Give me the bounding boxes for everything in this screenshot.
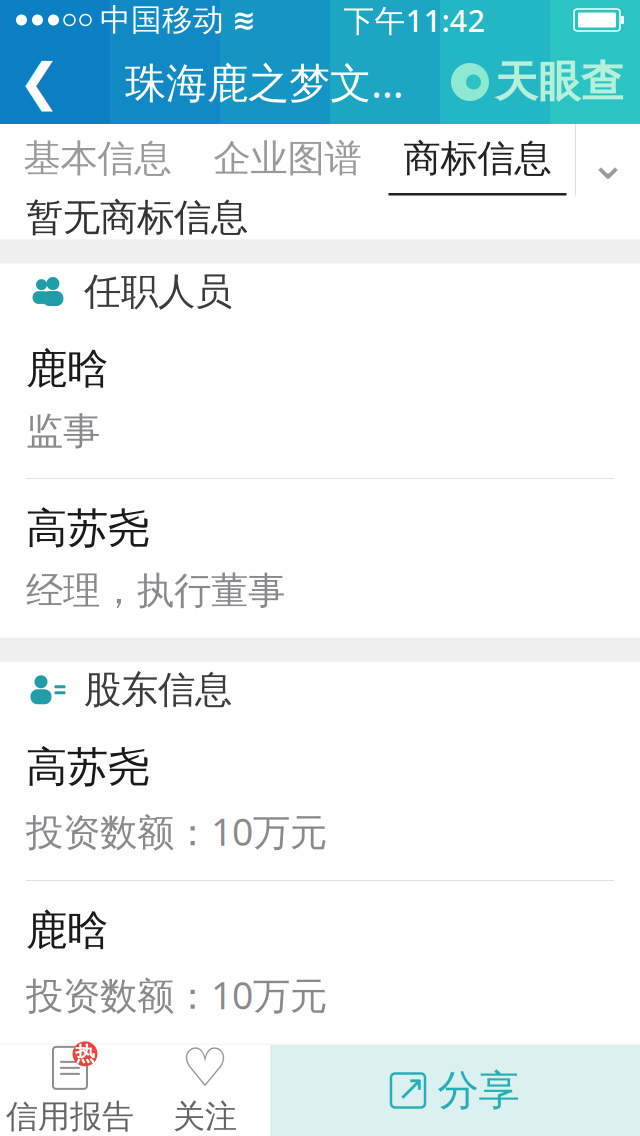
staticText: 投资数额：10万元 (26, 970, 327, 1019)
staticText: 任职人员 (84, 269, 232, 314)
button[interactable]: ♡ (140, 1045, 270, 1136)
staticText: ⌄ (589, 137, 627, 189)
staticText: 高苏尧 (26, 503, 149, 554)
staticText: 中国移动 (100, 1, 224, 39)
button[interactable]: 高苏尧 (0, 718, 640, 881)
staticText: 关注 (173, 1097, 237, 1136)
button[interactable]: 鹿晗 (0, 881, 640, 1043)
staticText: ♡ (181, 1038, 229, 1098)
staticText: 基本信息 (23, 136, 171, 181)
staticText: 热 (75, 1042, 95, 1066)
staticText: 高苏尧 (26, 742, 149, 793)
button[interactable]: 高苏尧 (0, 479, 640, 638)
staticText: 经理，执行董事 (26, 568, 285, 614)
staticText: ≋ (232, 4, 255, 36)
staticText: ❮ (18, 53, 60, 111)
staticText: 监事 (26, 408, 100, 454)
button[interactable]: 鹿晗 (0, 319, 640, 479)
staticText: ↗ (396, 1068, 425, 1107)
button[interactable]: 企业图谱 (192, 124, 382, 202)
staticText: 分享 (437, 1065, 519, 1116)
staticText: 企业图谱 (213, 136, 361, 181)
button[interactable]: 返回 (0, 40, 78, 124)
staticText: 商标信息 (403, 136, 551, 181)
staticText: 下午11:42 (343, 0, 485, 40)
button[interactable]: 展开更多标签 (576, 124, 640, 202)
button[interactable]: 热 (0, 1045, 140, 1136)
button[interactable]: 商标信息 (382, 124, 572, 202)
staticText: 珠海鹿之梦文… (125, 55, 404, 109)
staticText: 投资数额：10万元 (26, 806, 327, 856)
staticText: 鹿晗 (26, 905, 108, 956)
staticText: 信用报告 (6, 1097, 134, 1136)
staticText: 股东信息 (84, 667, 232, 713)
button[interactable]: ↗ (270, 1045, 640, 1136)
staticText: 暂无商标信息 (26, 195, 248, 240)
staticText: 天眼查 (495, 56, 624, 108)
button[interactable]: 基本信息 (2, 124, 192, 202)
staticText: 鹿晗 (26, 343, 108, 394)
